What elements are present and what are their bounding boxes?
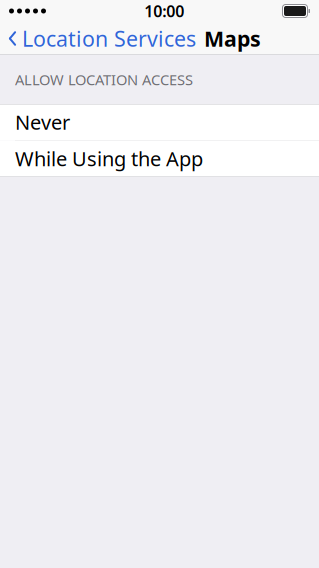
button[interactable]: Never (0, 104, 319, 140)
staticText: Location Services (22, 24, 196, 53)
staticText: Never (15, 109, 70, 135)
staticText: 10:00 (144, 0, 184, 22)
staticText: Maps (204, 24, 261, 53)
button[interactable]: Location Services (0, 18, 196, 59)
staticText: While Using the App (15, 145, 203, 172)
staticText: ALLOW LOCATION ACCESS (15, 70, 193, 89)
button[interactable]: While Using the App (0, 140, 319, 176)
